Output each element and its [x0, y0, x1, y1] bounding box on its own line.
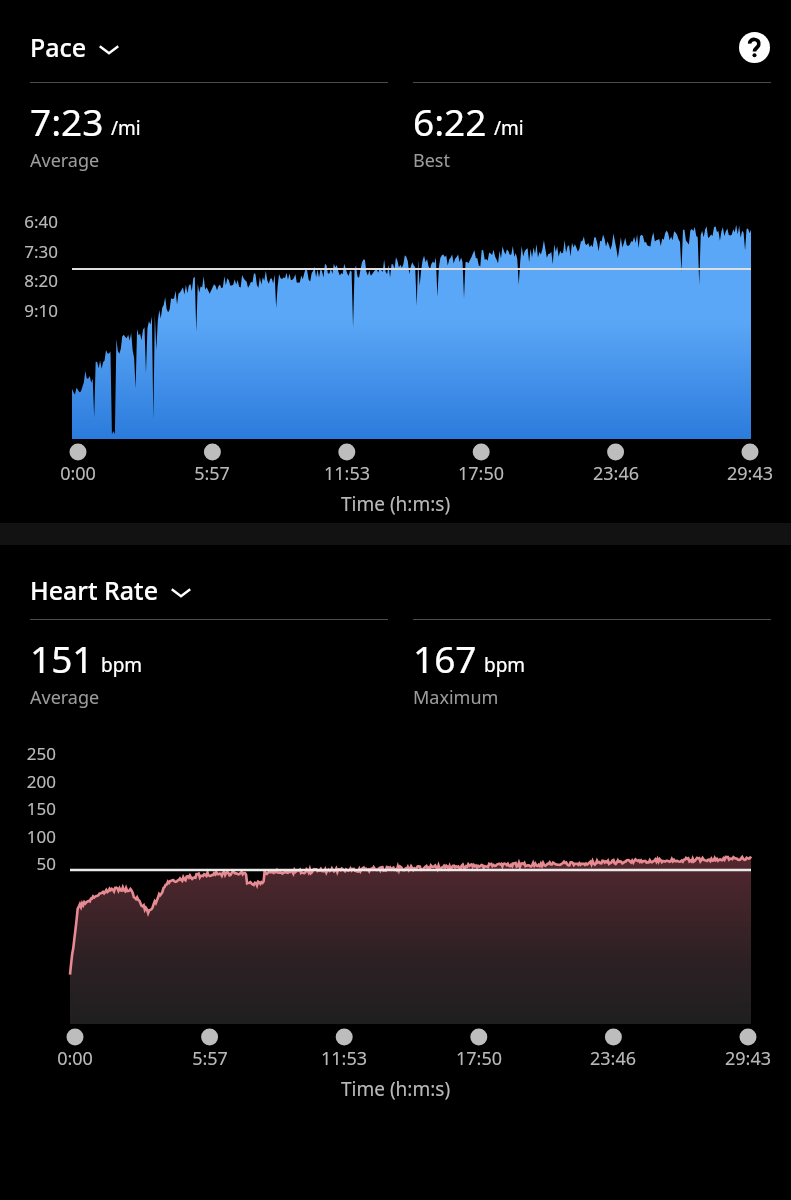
- staticText: 9:10: [12, 299, 58, 322]
- staticText: 7:30: [12, 240, 58, 263]
- staticText: Maximum: [413, 685, 499, 710]
- staticText: Best: [413, 148, 450, 173]
- staticText: Heart Rate: [30, 573, 159, 607]
- staticText: 23:46: [568, 1046, 658, 1071]
- staticText: bpm: [101, 652, 143, 678]
- staticText: 0:00: [30, 1046, 120, 1071]
- staticText: 250: [6, 742, 56, 765]
- staticText: 5:57: [167, 461, 257, 486]
- staticText: Pace: [30, 30, 87, 64]
- staticText: 29:43: [703, 1046, 791, 1071]
- button[interactable]: Heart Rate: [30, 573, 192, 607]
- staticText: 151: [30, 633, 94, 683]
- button[interactable]: 151: [30, 619, 388, 710]
- button[interactable]: Help: [731, 24, 777, 70]
- button[interactable]: Pace: [30, 30, 120, 64]
- staticText: /mi: [494, 115, 524, 141]
- staticText: /mi: [111, 115, 141, 141]
- button[interactable]: 6:22: [413, 82, 771, 173]
- staticText: 17:50: [436, 461, 526, 486]
- staticText: Time (h:m:s): [341, 1076, 451, 1102]
- staticText: Average: [30, 148, 100, 173]
- staticText: Average: [30, 685, 100, 710]
- staticText: 200: [6, 770, 56, 793]
- staticText: 8:20: [12, 269, 58, 292]
- staticText: 6:22: [413, 96, 487, 146]
- staticText: 29:43: [705, 461, 791, 486]
- staticText: 11:53: [302, 461, 392, 486]
- staticText: 7:23: [30, 96, 104, 146]
- staticText: 17:50: [434, 1046, 524, 1071]
- staticText: 11:53: [299, 1046, 389, 1071]
- staticText: 23:46: [571, 461, 661, 486]
- staticText: 0:00: [33, 461, 123, 486]
- staticText: 6:40: [12, 210, 58, 233]
- staticText: 5:57: [165, 1046, 255, 1071]
- button[interactable]: 7:23: [30, 82, 388, 173]
- staticText: bpm: [484, 652, 526, 678]
- staticText: 50: [6, 852, 56, 875]
- staticText: 150: [6, 797, 56, 820]
- staticText: 100: [6, 825, 56, 848]
- button[interactable]: 167: [413, 619, 771, 710]
- staticText: 167: [413, 633, 477, 683]
- staticText: Time (h:m:s): [341, 491, 451, 517]
